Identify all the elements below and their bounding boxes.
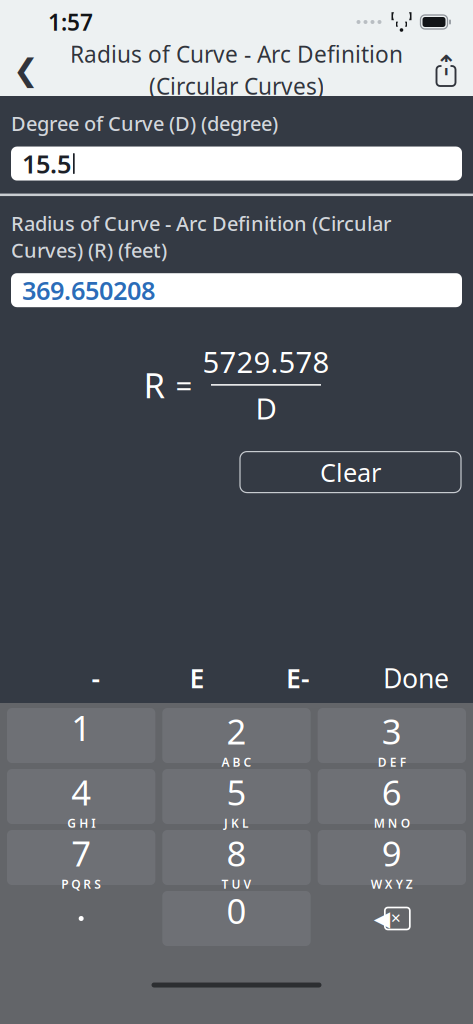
button[interactable]: 5 (162, 769, 311, 824)
staticText: Degree of Curve (D) (degree) (11, 110, 278, 137)
staticText: 5 (226, 769, 246, 815)
staticText: 3 (382, 708, 402, 754)
staticText: 0 (226, 887, 246, 933)
staticText: J K L (224, 815, 249, 831)
button[interactable]: 0 (162, 891, 311, 946)
button[interactable]: 8 (162, 830, 311, 885)
staticText: Clear (320, 455, 381, 489)
button[interactable]: Decimal point (7, 891, 155, 946)
staticText: Done (383, 660, 449, 696)
staticText: 4 (71, 769, 91, 815)
button[interactable]: Share (419, 44, 473, 96)
button[interactable]: 6 (318, 769, 466, 824)
staticText: 6 (382, 769, 402, 815)
staticText: T U V (221, 876, 251, 892)
button[interactable]: E (146, 655, 248, 701)
staticText: M N O (374, 815, 410, 831)
button[interactable]: 15.5 (11, 147, 462, 181)
staticText: (Circular Curves) (149, 71, 324, 101)
button[interactable]: Clear (240, 452, 461, 493)
staticText: = (175, 365, 192, 404)
staticText: 8 (226, 830, 246, 876)
staticText: ↑ (434, 50, 457, 81)
staticText: G H I (67, 815, 95, 831)
staticText: D (255, 389, 276, 428)
staticText: E- (286, 660, 310, 696)
button[interactable]: E- (248, 655, 348, 701)
staticText: Radius of Curve - Arc Definition (70, 39, 403, 69)
staticText: R (143, 362, 165, 408)
button[interactable]: 1 (7, 708, 155, 763)
button[interactable]: Delete (318, 891, 466, 946)
staticText: 7 (71, 830, 91, 876)
staticText: W X Y Z (371, 876, 413, 892)
button[interactable]: 4 (7, 769, 155, 824)
staticText: 1 (71, 704, 91, 750)
staticText: ❮ (13, 53, 39, 87)
button[interactable]: 9 (318, 830, 466, 885)
button[interactable]: 2 (162, 708, 311, 763)
staticText: 15.5 (22, 147, 71, 180)
staticText: A B C (221, 754, 251, 770)
staticText: E (189, 660, 204, 696)
button[interactable]: Done (369, 655, 463, 701)
button[interactable]: 369.650208 (11, 273, 462, 307)
button[interactable]: Back (0, 44, 52, 96)
staticText (235, 934, 238, 949)
staticText: D E F (378, 754, 406, 770)
staticText: 5729.578 (202, 342, 329, 381)
staticText: ✕ (390, 911, 401, 926)
staticText: 9 (382, 830, 402, 876)
button[interactable]: - (46, 655, 146, 701)
staticText: ◀ (374, 906, 390, 931)
button[interactable]: 3 (318, 708, 466, 763)
staticText: 2 (226, 708, 246, 754)
staticText: Radius of Curve - Arc Definition (Circul… (11, 210, 391, 263)
staticText: 369.650208 (22, 273, 155, 307)
staticText: - (91, 660, 100, 696)
staticText (80, 751, 83, 766)
button[interactable]: 7 (7, 830, 155, 885)
staticText: P Q R S (61, 876, 101, 892)
staticText: 1:57 (48, 7, 93, 37)
